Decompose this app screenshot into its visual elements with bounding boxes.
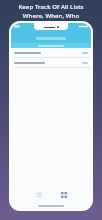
button[interactable] [11,58,91,68]
button[interactable] [11,48,91,58]
staticText: Keep Track Of All Lists [0,3,102,11]
staticText: Where, When, Who [0,12,102,20]
button[interactable] [11,43,91,48]
button[interactable]: Lists [31,188,47,202]
button[interactable]: Calendar [56,188,72,202]
